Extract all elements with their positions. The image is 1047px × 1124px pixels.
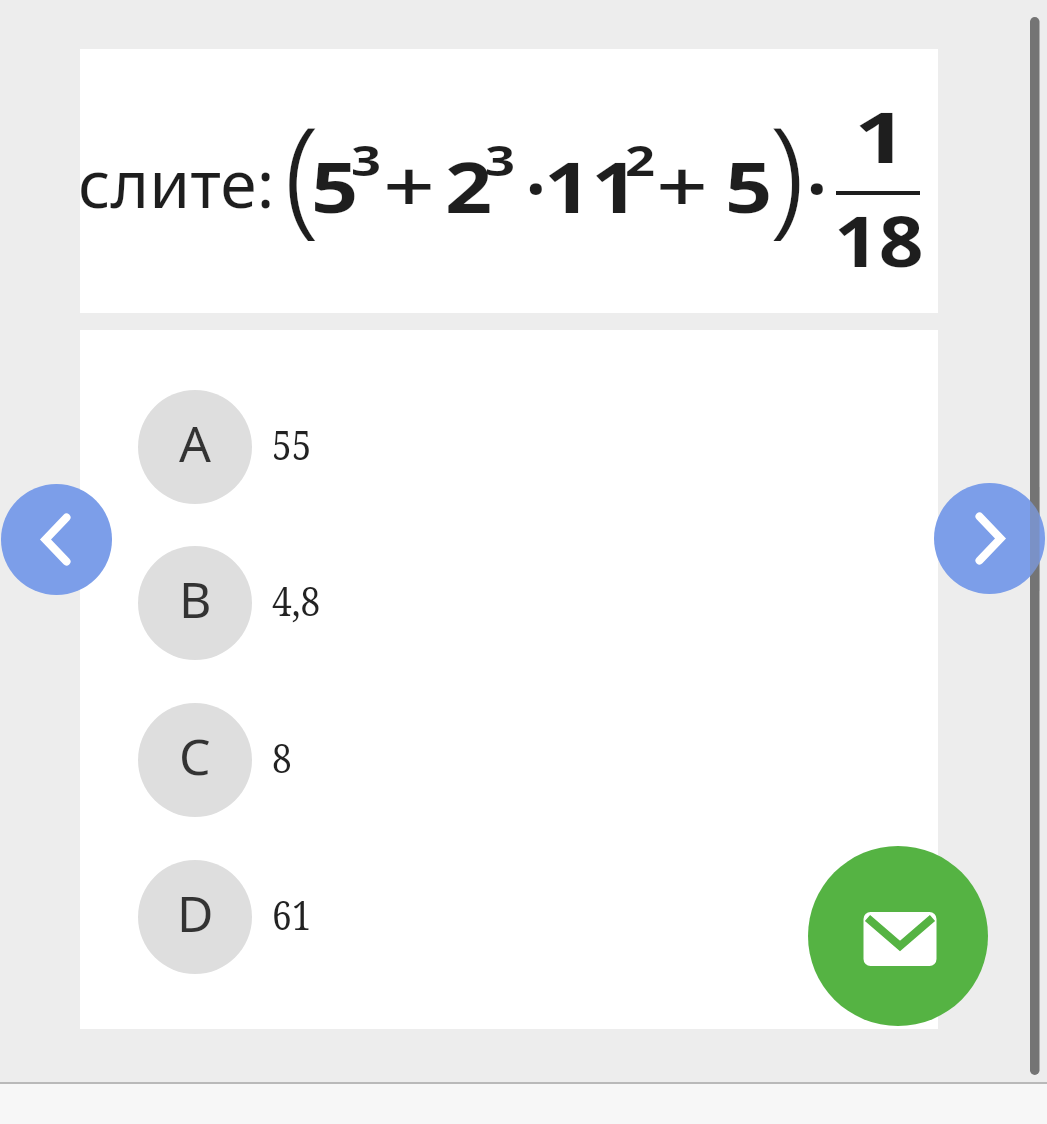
staticText: 2 <box>625 131 656 188</box>
button[interactable]: D <box>138 860 598 974</box>
button[interactable]: C <box>138 703 598 817</box>
staticText: ) <box>769 84 805 258</box>
staticText: слите: <box>78 137 275 227</box>
staticText: · <box>526 139 546 234</box>
button[interactable] <box>934 483 1045 594</box>
staticText: 5 <box>725 138 773 233</box>
staticText: A <box>179 409 211 477</box>
staticText: D <box>177 879 214 947</box>
staticText: · <box>807 139 827 234</box>
staticText: 3 <box>485 131 516 188</box>
staticText: B <box>179 565 212 633</box>
button[interactable] <box>1 484 112 595</box>
staticText: 18 <box>834 192 925 287</box>
staticText: 5 <box>311 138 359 233</box>
staticText: 4,8 <box>272 573 320 627</box>
staticText: + <box>383 137 436 232</box>
staticText: 3 <box>351 131 382 188</box>
button[interactable]: B <box>138 546 598 660</box>
staticText: 55 <box>272 417 312 471</box>
staticText: 1 <box>854 88 908 183</box>
staticText: 11 <box>544 138 640 233</box>
staticText: 61 <box>272 887 312 941</box>
staticText: 2 <box>445 138 493 233</box>
staticText: + <box>656 137 709 232</box>
staticText: C <box>179 722 211 790</box>
staticText: 8 <box>272 730 292 784</box>
button[interactable]: A <box>138 390 598 504</box>
button[interactable] <box>808 846 988 1026</box>
staticText: ( <box>284 84 320 258</box>
